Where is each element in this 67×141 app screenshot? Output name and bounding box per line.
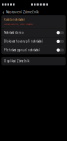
button[interactable]: Switch <box>57 48 64 52</box>
button[interactable]: Blokovat hovory při nahrávání <box>1 37 66 45</box>
staticText: O aplikaci Zámečník <box>4 59 29 63</box>
button[interactable]: Přehrávat zapnutí nahrávání <box>1 46 66 54</box>
button[interactable]: Nahrávat stereo <box>1 29 66 37</box>
button[interactable]: Switch <box>57 31 64 34</box>
staticText: Kvalita nahrávání <box>4 18 25 21</box>
staticText: Nastavení Zámečník <box>6 10 39 14</box>
staticText: Nahrávat stereo <box>4 31 24 34</box>
button[interactable]: Back <box>1 9 6 15</box>
staticText: Vysoká kvalita, větší soubory <box>4 22 33 25</box>
button[interactable]: Switch <box>57 40 64 43</box>
button[interactable]: O aplikaci Zámečník <box>1 57 66 65</box>
button[interactable]: Kvalita nahrávání <box>1 15 66 28</box>
staticText: Přehrávat zapnutí nahrávání <box>4 48 40 52</box>
staticText: ‹ <box>2 8 4 16</box>
staticText: Blokovat hovory při nahrávání <box>4 40 43 43</box>
